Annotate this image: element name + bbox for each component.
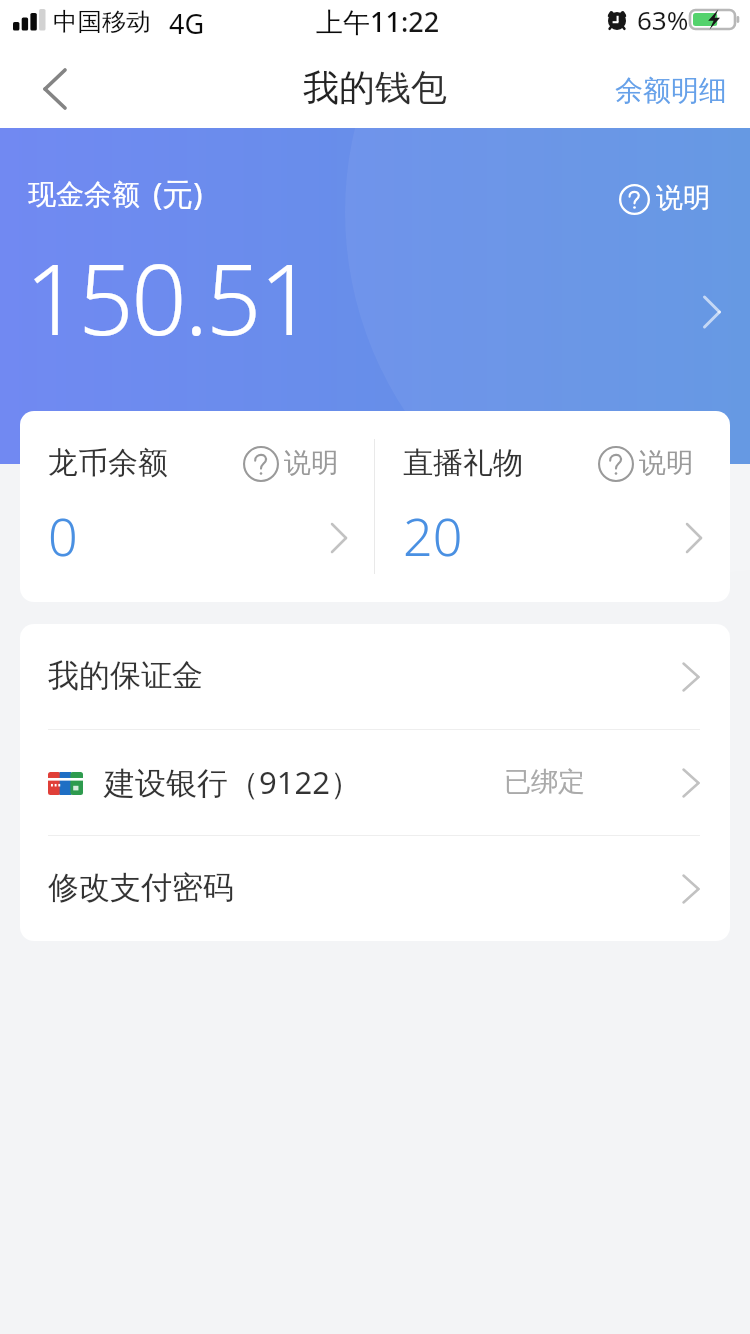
staticText: 直播礼物 xyxy=(403,444,523,482)
staticText: 修改支付密码 xyxy=(48,868,234,907)
staticText: 余额明细 xyxy=(615,73,727,108)
staticText: 我的保证金 xyxy=(48,656,203,695)
staticText: 0 xyxy=(48,500,78,571)
button[interactable]: 建设银行（9122） xyxy=(20,730,730,835)
staticText: 我的钱包 xyxy=(303,65,447,110)
button[interactable]: 修改支付密码 xyxy=(20,836,730,941)
staticText: 20 xyxy=(403,500,463,571)
staticText: 63% xyxy=(637,2,689,37)
staticText: 已绑定 xyxy=(504,765,585,799)
staticText: 上午11:22 xyxy=(316,3,440,40)
staticText: 龙币余额 xyxy=(48,444,168,482)
staticText: 150.51 xyxy=(25,231,313,363)
button[interactable]: 说明 xyxy=(619,182,710,216)
staticText: 中国移动 xyxy=(53,6,151,37)
staticText: 4G xyxy=(169,5,205,42)
button[interactable]: 我的保证金 xyxy=(20,624,730,729)
staticText: 说明 xyxy=(639,446,693,480)
button[interactable]: 龙币余额 xyxy=(20,411,374,602)
staticText: (元) xyxy=(153,172,203,214)
staticText: 说明 xyxy=(656,181,710,215)
button[interactable]: Cash balance detail xyxy=(690,290,734,334)
staticText: 说明 xyxy=(284,446,338,480)
button[interactable]: Back xyxy=(0,50,96,128)
staticText: 建设银行（9122） xyxy=(104,761,361,803)
button[interactable]: 直播礼物 xyxy=(375,411,730,602)
staticText: 现金余额 xyxy=(28,177,140,212)
button[interactable]: 余额明细 xyxy=(615,50,727,128)
